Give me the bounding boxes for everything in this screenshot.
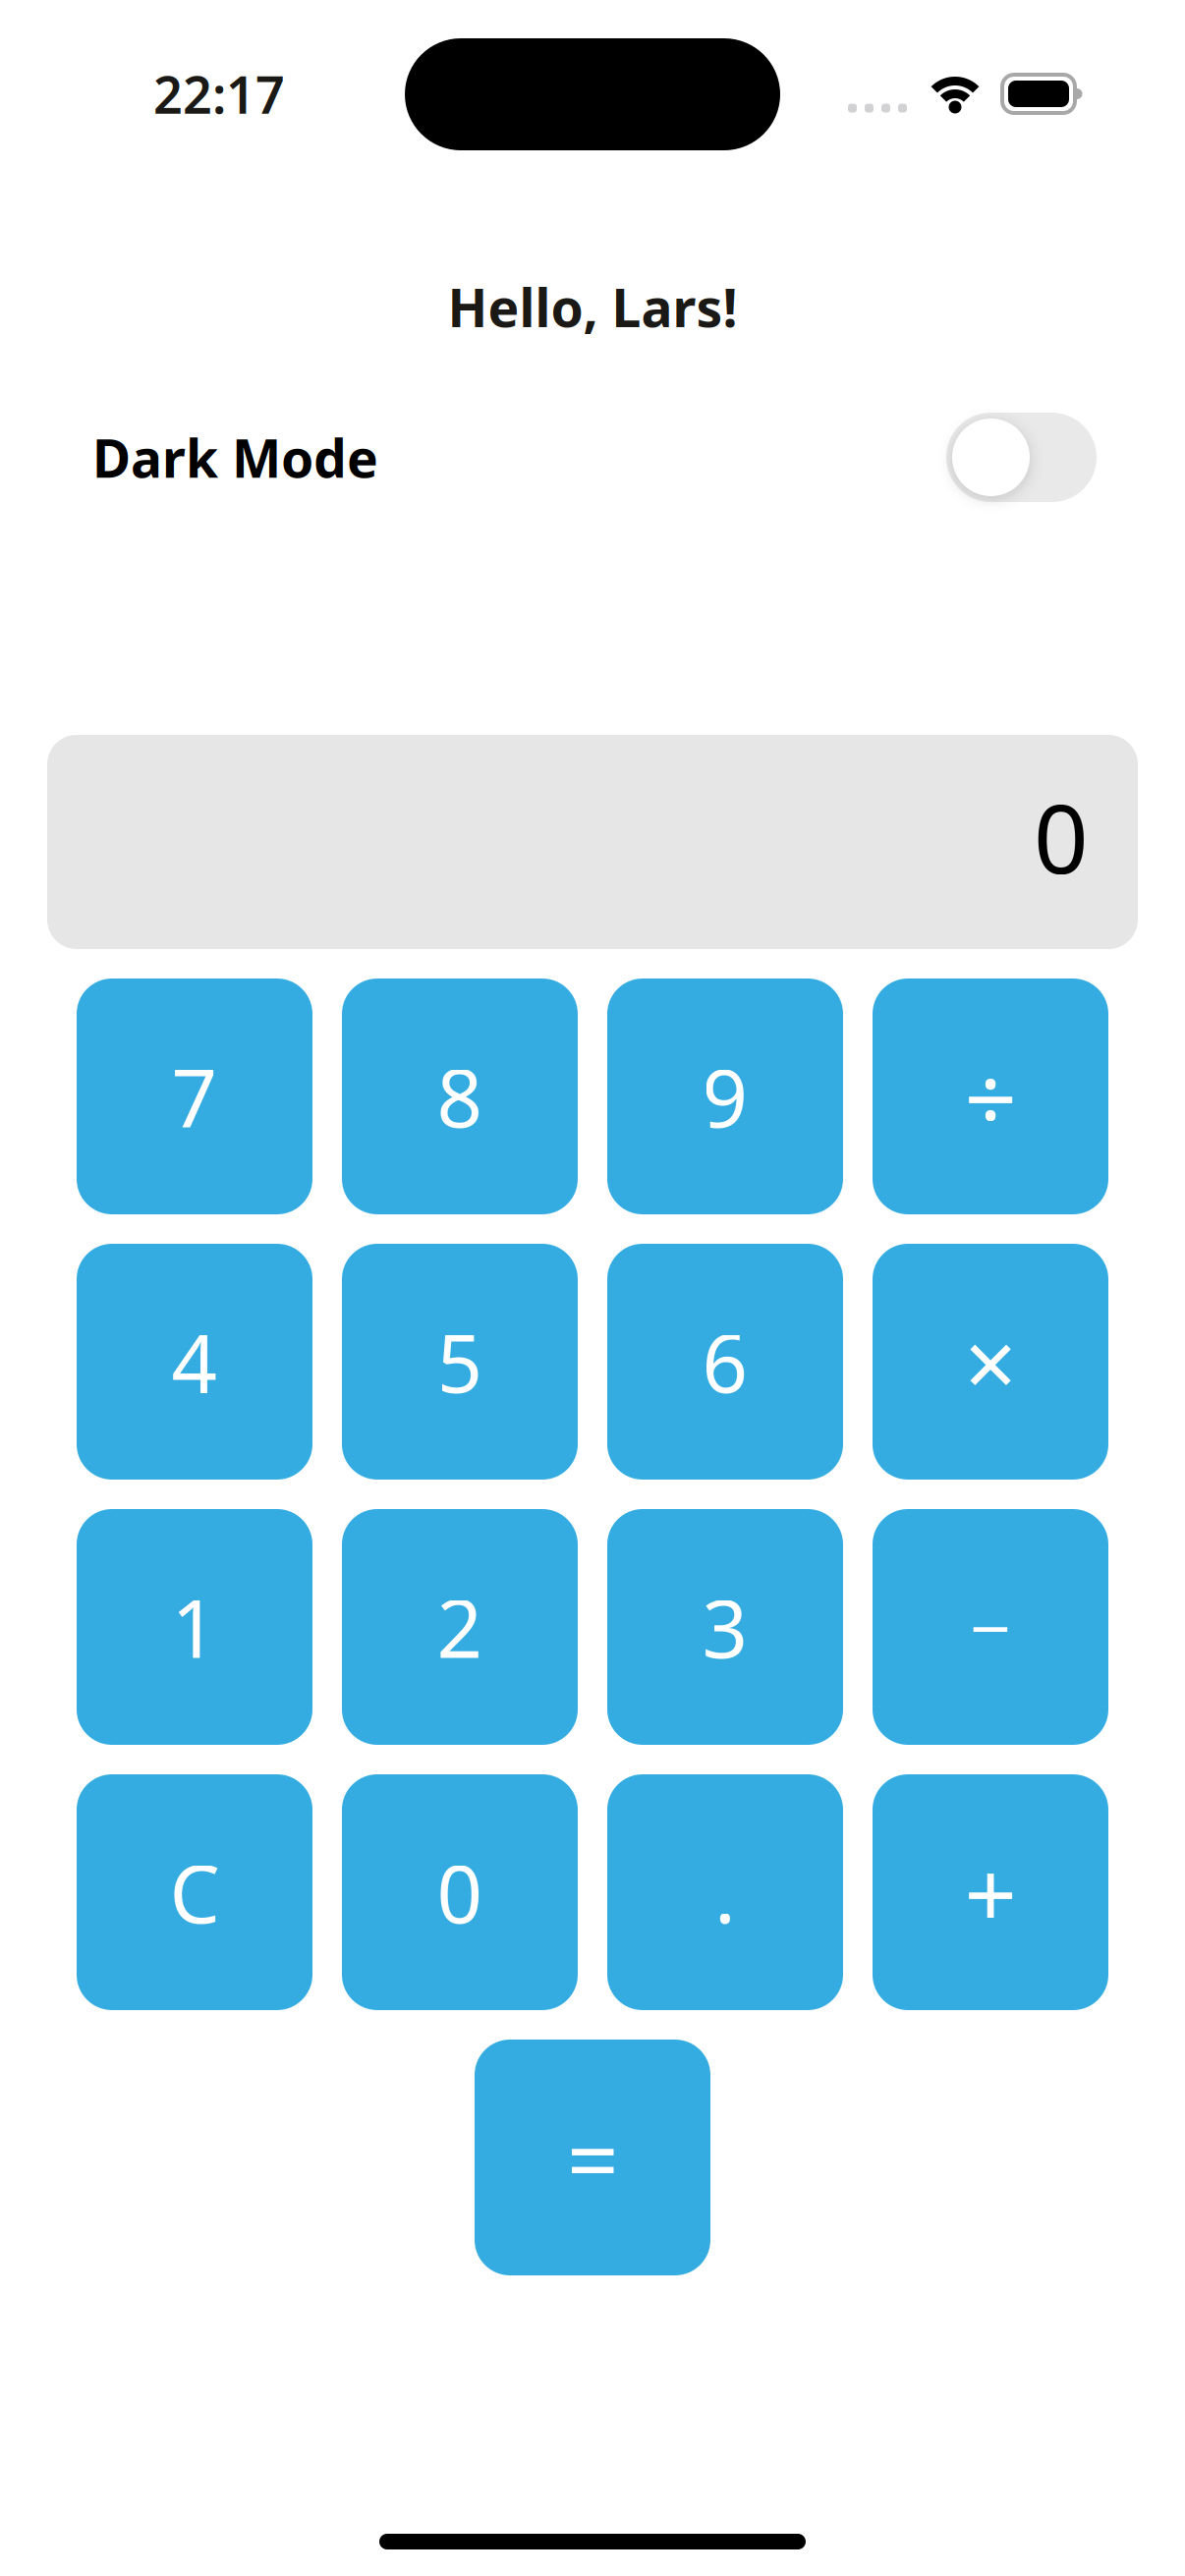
staticText: 7 [171, 1043, 218, 1149]
button[interactable]: Dark Mode [0, 413, 1185, 502]
staticText: 0 [437, 1839, 483, 1945]
staticText: 3 [702, 1574, 748, 1680]
button[interactable]: 4 [77, 1244, 312, 1480]
button[interactable]: + [873, 1774, 1108, 2010]
button[interactable]: 9 [607, 979, 843, 1214]
button[interactable]: 3 [607, 1509, 843, 1745]
button[interactable]: 0 [342, 1774, 578, 2010]
button[interactable]: 6 [607, 1244, 843, 1480]
button[interactable]: 1 [77, 1509, 312, 1745]
staticText: C [169, 1839, 220, 1945]
button[interactable]: . [607, 1774, 843, 2010]
button[interactable]: × [873, 1244, 1108, 1480]
staticText: 8 [437, 1043, 483, 1149]
staticText: + [964, 1831, 1016, 1953]
staticText: 4 [171, 1309, 218, 1415]
staticText: 0 [1034, 773, 1089, 900]
staticText: Dark Mode [92, 423, 378, 492]
button[interactable]: C [77, 1774, 312, 2010]
staticText: − [970, 1579, 1011, 1675]
staticText: 22:17 [153, 60, 285, 128]
button[interactable]: 7 [77, 979, 312, 1214]
staticText: 1 [171, 1574, 218, 1680]
button[interactable]: ÷ [873, 979, 1108, 1214]
staticText: Hello, Lars! [448, 272, 737, 342]
button[interactable]: − [873, 1509, 1108, 1745]
button[interactable]: 2 [342, 1509, 578, 1745]
button[interactable]: 8 [342, 979, 578, 1214]
staticText: × [964, 1301, 1016, 1422]
staticText: = [566, 2097, 619, 2218]
staticText: 9 [702, 1043, 748, 1149]
staticText: ÷ [964, 1036, 1016, 1157]
staticText: 6 [702, 1309, 748, 1415]
staticText: 2 [437, 1574, 483, 1680]
button[interactable]: = [475, 2040, 710, 2275]
button[interactable]: Dark Mode [946, 413, 1097, 502]
staticText: . [714, 1839, 736, 1945]
button[interactable]: 5 [342, 1244, 578, 1480]
staticText: 5 [437, 1309, 483, 1415]
